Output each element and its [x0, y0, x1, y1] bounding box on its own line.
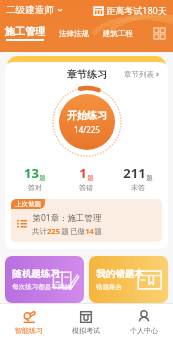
staticText: 14/225 [74, 124, 100, 135]
staticText: 我的错题本 [96, 268, 144, 280]
staticText: 距离考试180天 [106, 4, 167, 16]
staticText: 211 [123, 164, 146, 182]
button[interactable]: 智能练习 [0, 310, 57, 335]
button[interactable]: 上次做题 [11, 199, 162, 242]
staticText: 答对 [28, 183, 42, 192]
staticText: 题 [87, 174, 94, 182]
button[interactable]: 个人中心 [115, 310, 173, 335]
staticText: 模拟考试 [72, 326, 100, 335]
staticText: 1 [79, 164, 87, 182]
staticText: 个人中心 [130, 326, 158, 335]
button[interactable]: 模拟考试 [57, 310, 115, 335]
button[interactable]: 施工管理 [5, 25, 45, 41]
staticText: 建筑工程 [103, 29, 133, 38]
button[interactable]: 开始练习 [59, 94, 115, 150]
staticText: 答错 [79, 183, 93, 192]
staticText: 法律法规 [59, 29, 89, 38]
staticText: 随机题练习 [12, 268, 60, 280]
staticText: 章节列表 [124, 70, 154, 79]
button[interactable]: 13 [9, 164, 60, 192]
staticText: 每次练习都是不同的 [12, 283, 71, 291]
staticText: 智能练习 [15, 326, 43, 335]
button[interactable]: All subjects grid [151, 25, 167, 41]
staticText: 错题集合 [96, 283, 122, 291]
button[interactable]: 二级建造师 [6, 4, 63, 16]
button[interactable]: Exam countdown calendar [94, 4, 167, 16]
staticText: 章节练习 [67, 68, 107, 81]
staticText: 未答 [131, 183, 145, 192]
staticText: 共计 [32, 227, 47, 236]
button[interactable]: 章节列表 [124, 70, 160, 79]
staticText: 题 [39, 174, 46, 182]
button[interactable]: 1 [60, 164, 112, 192]
staticText: 13 [24, 164, 39, 182]
staticText: 第01章：施工管理 [32, 212, 102, 224]
button[interactable]: 我的错题本 [89, 256, 168, 303]
staticText: 题 [146, 174, 153, 182]
staticText: 上次做题 [15, 200, 41, 208]
staticText: 题 [60, 226, 70, 236]
button[interactable]: 建筑工程 [103, 29, 133, 38]
button[interactable]: 211 [112, 164, 164, 192]
button[interactable]: 法律法规 [59, 29, 89, 38]
staticText: 已做 [70, 227, 85, 236]
staticText: 二级建造师 [6, 4, 54, 16]
button[interactable]: 随机题练习 [5, 256, 84, 303]
staticText: 施工管理 [5, 25, 45, 38]
staticText: 14 [85, 226, 94, 236]
other: Exam countdown calendar [94, 6, 103, 15]
staticText: 225 [47, 226, 60, 236]
staticText: 开始练习 [67, 109, 107, 122]
staticText: 题 [94, 227, 102, 236]
